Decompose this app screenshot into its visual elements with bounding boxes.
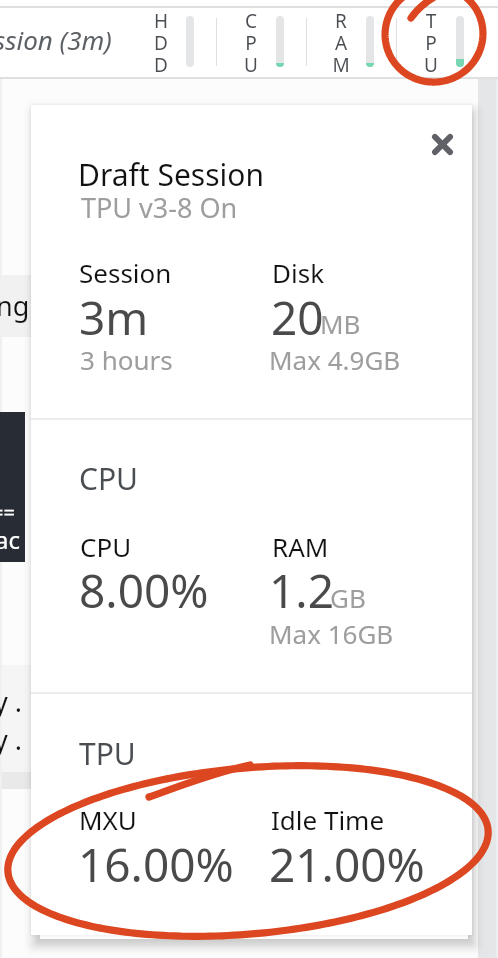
staticText: y . [0, 683, 23, 720]
staticText: CPU [80, 529, 132, 564]
staticText: ssion (3m) [0, 22, 112, 57]
staticText: Max 4.9GB [269, 342, 401, 377]
staticText: CPU [79, 458, 139, 499]
staticText: H [145, 8, 177, 34]
staticText: == [0, 499, 15, 526]
staticText: Draft Session [78, 154, 265, 195]
staticText: Idle Time [271, 802, 385, 837]
staticText: TPU [79, 733, 136, 774]
staticText: D [145, 30, 177, 56]
staticText: 21.00% [269, 833, 425, 896]
staticText: 3 hours [80, 342, 173, 377]
button[interactable]: TPU usage [410, 8, 498, 77]
button[interactable]: Disk usage [140, 8, 230, 77]
staticText: P [235, 30, 267, 56]
button[interactable]: Close [420, 122, 464, 166]
staticText: Disk [272, 255, 325, 290]
staticText: 3m [79, 286, 149, 349]
staticText: RAM [272, 529, 329, 564]
staticText: C [235, 8, 267, 34]
staticText: A [325, 30, 357, 56]
button[interactable]: CPU usage [230, 8, 320, 77]
staticText: ac [0, 523, 20, 556]
staticText: 20 [271, 286, 324, 349]
staticText: MB [320, 306, 361, 341]
staticText: ng [0, 287, 30, 324]
staticText: U [415, 52, 447, 78]
staticText: R [325, 8, 357, 34]
button[interactable]: RAM usage [320, 8, 410, 77]
staticText: Max 16GB [269, 616, 394, 651]
staticText: P [415, 30, 447, 56]
staticText: GB [330, 580, 366, 615]
staticText: 8.00% [79, 559, 209, 622]
staticText: M [325, 52, 357, 78]
staticText: y . [0, 721, 23, 758]
staticText: MXU [79, 802, 137, 837]
staticText: TPU v3-8 On [81, 189, 238, 226]
staticText: Session [79, 255, 172, 290]
staticText: 1.2 [269, 559, 334, 622]
staticText: T [415, 8, 447, 34]
staticText: 16.00% [78, 833, 234, 896]
staticText: D [145, 52, 177, 78]
staticText: U [235, 52, 267, 78]
